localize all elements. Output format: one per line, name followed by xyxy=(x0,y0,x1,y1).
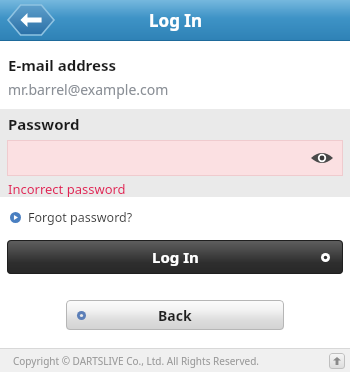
button[interactable]: Forgot password? xyxy=(10,209,133,226)
button[interactable]: Scroll to top xyxy=(329,353,345,369)
staticText: Log In xyxy=(152,247,199,267)
staticText: Copyright © DARTSLIVE Co., Ltd. All Righ… xyxy=(13,354,259,368)
staticText: E-mail address xyxy=(8,55,117,75)
button[interactable]: Show password xyxy=(7,140,343,176)
staticText: Password xyxy=(8,114,80,134)
button[interactable]: Back xyxy=(66,300,284,330)
staticText: Forgot password? xyxy=(28,209,133,226)
staticText: mr.barrel@example.com xyxy=(8,80,169,99)
button[interactable]: Back xyxy=(8,5,54,35)
staticText: Incorrect password xyxy=(8,180,126,197)
staticText: Log In xyxy=(149,9,202,32)
button[interactable]: Show password xyxy=(311,150,333,166)
staticText: Back xyxy=(158,306,192,325)
button[interactable]: Log In xyxy=(7,240,343,274)
